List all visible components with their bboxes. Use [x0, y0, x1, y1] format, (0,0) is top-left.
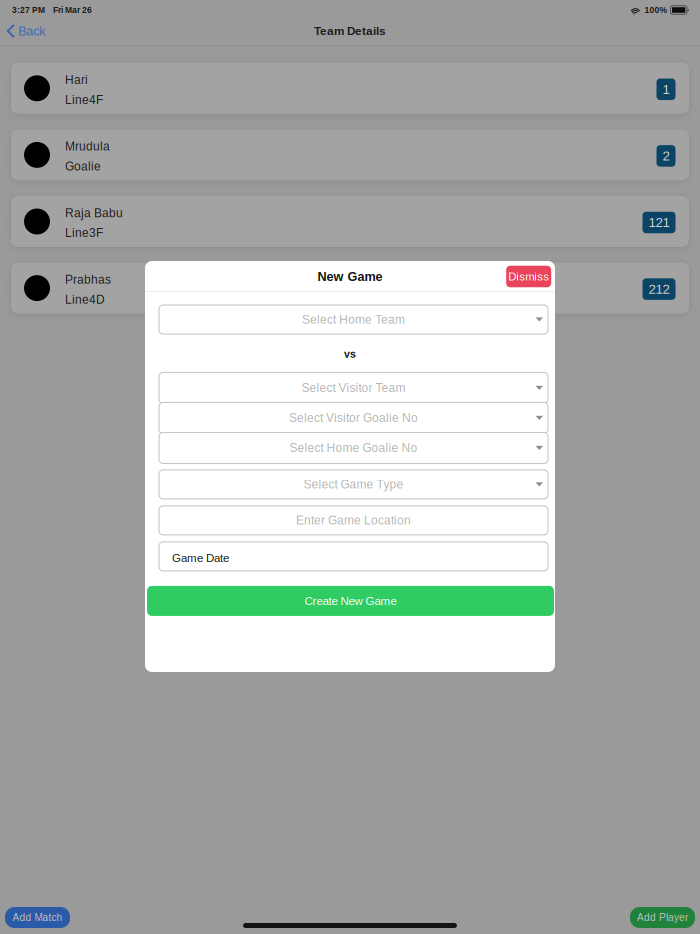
- staticText: Back: [18, 24, 45, 38]
- staticText: Select Home Goalie No: [289, 441, 417, 455]
- staticText: Fri Mar 26: [53, 5, 92, 15]
- button[interactable]: Select Home Team: [159, 305, 548, 334]
- staticText: 2: [662, 148, 669, 163]
- staticText: Mrudula: [65, 140, 110, 153]
- staticText: Prabhas: [65, 273, 111, 286]
- staticText: Line3F: [65, 226, 103, 240]
- button[interactable]: Create New Game: [147, 586, 554, 616]
- button[interactable]: Prabhas: [11, 263, 689, 314]
- staticText: Line4D: [65, 293, 105, 306]
- button[interactable]: Raja Babu: [11, 196, 689, 247]
- button[interactable]: Select Game Type: [159, 470, 548, 499]
- button[interactable]: Enter Game Location: [159, 506, 548, 535]
- button[interactable]: Hari: [11, 63, 689, 114]
- staticText: 100%: [644, 5, 667, 15]
- staticText: 121: [648, 215, 669, 230]
- button[interactable]: Add Match: [5, 907, 70, 928]
- staticText: 212: [648, 282, 669, 297]
- button[interactable]: Select Visitor Team: [159, 372, 548, 403]
- staticText: Game Date: [172, 551, 229, 564]
- button[interactable]: Dismiss: [506, 266, 551, 287]
- staticText: Goalie: [65, 160, 101, 173]
- staticText: Team Details: [314, 24, 386, 37]
- button[interactable]: Game Date: [159, 542, 548, 571]
- staticText: 3:27 PM: [12, 5, 45, 15]
- staticText: Select Game Type: [303, 478, 403, 491]
- staticText: Line4F: [65, 93, 103, 106]
- staticText: vs: [344, 348, 356, 360]
- button[interactable]: Select Home Goalie No: [159, 432, 548, 463]
- staticText: Raja Babu: [65, 206, 123, 220]
- staticText: Create New Game: [304, 594, 396, 607]
- staticText: Add Match: [12, 912, 62, 923]
- staticText: 1: [662, 82, 669, 97]
- staticText: Add Player: [637, 912, 688, 923]
- staticText: Dismiss: [508, 270, 549, 283]
- staticText: New Game: [317, 269, 382, 284]
- staticText: Enter Game Location: [296, 514, 411, 527]
- button[interactable]: Select Visitor Goalie No: [159, 402, 548, 433]
- button[interactable]: Back: [0, 23, 45, 43]
- staticText: Select Visitor Goalie No: [289, 411, 418, 425]
- button[interactable]: Add Player: [630, 907, 695, 928]
- staticText: Select Visitor Team: [301, 381, 405, 395]
- staticText: Select Home Team: [302, 313, 405, 326]
- button[interactable]: Mrudula: [11, 129, 689, 180]
- staticText: Hari: [65, 73, 88, 86]
